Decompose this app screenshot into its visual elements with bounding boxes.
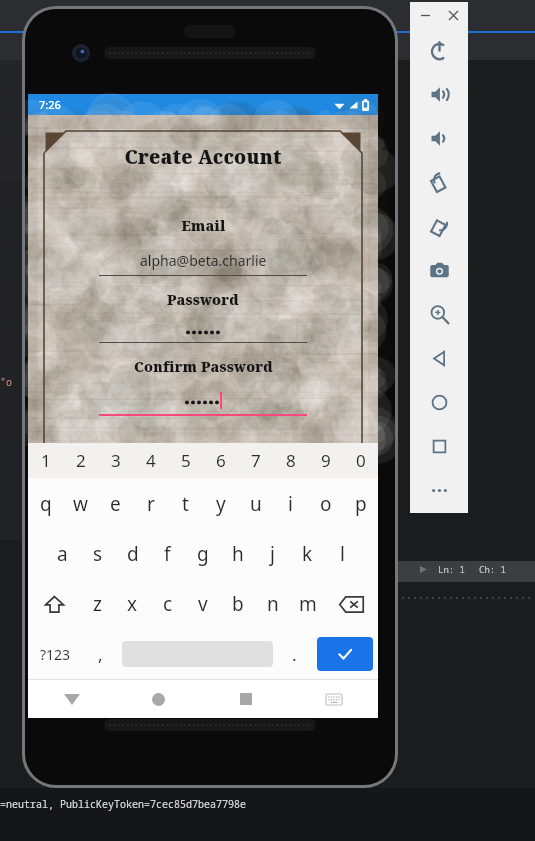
button[interactable]: b — [220, 579, 255, 629]
staticText: h — [232, 541, 244, 567]
button[interactable]: n — [255, 579, 290, 629]
button[interactable]: More — [410, 468, 468, 512]
button[interactable]: Backspace — [325, 579, 378, 629]
staticText: w — [73, 491, 88, 517]
staticText: o — [320, 491, 332, 517]
button[interactable]: Volume up — [410, 72, 468, 116]
button[interactable]: Home — [410, 380, 468, 424]
button[interactable]: 8 — [273, 443, 308, 478]
button[interactable]: w — [63, 478, 98, 529]
staticText: "o — [0, 375, 12, 389]
button[interactable]: y — [203, 478, 238, 529]
staticText: z — [93, 591, 102, 617]
staticText: 9 — [321, 449, 331, 472]
button[interactable]: Rotate right — [410, 204, 468, 248]
button[interactable]: Close — [444, 6, 462, 24]
staticText: =neutral, PublicKeyToken=7cec85d7bea7798… — [0, 797, 246, 811]
button[interactable]: Overview — [202, 680, 290, 718]
staticText: . — [292, 643, 297, 666]
button[interactable]: ?123 — [28, 629, 83, 679]
button[interactable]: 1 — [28, 443, 63, 478]
button[interactable]: u — [238, 478, 273, 529]
button[interactable]: 0 — [343, 443, 378, 478]
button[interactable]: f — [150, 529, 185, 579]
button[interactable]: 3 — [98, 443, 133, 478]
button[interactable]: r — [133, 478, 168, 529]
staticText: f — [164, 541, 171, 567]
staticText: 6 — [216, 449, 226, 472]
button[interactable]: k — [290, 529, 325, 579]
button[interactable]: 4 — [133, 443, 168, 478]
staticText: 7 — [251, 449, 261, 472]
button[interactable]: c — [150, 579, 185, 629]
button[interactable]: j — [255, 529, 290, 579]
button[interactable]: Volume down — [410, 116, 468, 160]
staticText: 8 — [286, 449, 296, 472]
button[interactable]: x — [115, 579, 150, 629]
button[interactable]: Enter — [317, 637, 373, 671]
staticText: y — [216, 491, 226, 517]
staticText: , — [98, 643, 103, 666]
staticText: 5 — [181, 449, 191, 472]
button[interactable] — [99, 325, 307, 343]
button[interactable]: s — [80, 529, 115, 579]
button[interactable]: g — [185, 529, 220, 579]
button[interactable]: 9 — [308, 443, 343, 478]
staticText: alpha@beta.charlie — [140, 251, 267, 270]
button[interactable]: . — [277, 629, 312, 679]
button[interactable]: o — [308, 478, 343, 529]
staticText: m — [299, 591, 317, 617]
button[interactable]: alpha@beta.charlie — [99, 251, 307, 276]
button[interactable]: Overview — [410, 424, 468, 468]
staticText: i — [288, 491, 293, 517]
staticText: p — [355, 491, 367, 517]
button[interactable]: l — [325, 529, 360, 579]
staticText: v — [198, 591, 208, 617]
button[interactable]: z — [80, 579, 115, 629]
staticText: k — [302, 541, 313, 567]
button[interactable]: 6 — [203, 443, 238, 478]
button[interactable]: 5 — [168, 443, 203, 478]
button[interactable] — [99, 392, 307, 416]
staticText: a — [57, 541, 68, 567]
button[interactable]: a — [45, 529, 80, 579]
button[interactable]: Switch keyboard — [290, 680, 378, 718]
button[interactable]: Zoom — [410, 292, 468, 336]
button[interactable]: , — [83, 629, 118, 679]
button[interactable]: Rotate left — [410, 160, 468, 204]
button[interactable]: i — [273, 478, 308, 529]
staticText: l — [340, 541, 345, 567]
staticText: n — [267, 591, 279, 617]
button[interactable]: d — [115, 529, 150, 579]
button[interactable]: Screenshot — [410, 248, 468, 292]
button[interactable]: Back — [410, 336, 468, 380]
button[interactable]: e — [98, 478, 133, 529]
button[interactable]: Power — [410, 28, 468, 72]
staticText: ?123 — [40, 645, 71, 664]
staticText: s — [93, 541, 103, 567]
staticText: 4 — [146, 449, 156, 472]
button[interactable]: m — [290, 579, 325, 629]
staticText: t — [182, 491, 189, 517]
button[interactable]: Hide keyboard — [28, 680, 115, 718]
staticText: 2 — [76, 449, 86, 472]
button[interactable]: t — [168, 478, 203, 529]
staticText: Password — [167, 290, 239, 309]
button[interactable]: Minimize — [416, 6, 434, 24]
button[interactable]: h — [220, 529, 255, 579]
button[interactable]: p — [343, 478, 378, 529]
button[interactable]: Home — [115, 680, 202, 718]
button[interactable]: 2 — [63, 443, 98, 478]
staticText: Email — [181, 216, 226, 235]
staticText: x — [127, 591, 138, 617]
staticText: Ln: 1 — [438, 563, 466, 575]
button[interactable]: 7 — [238, 443, 273, 478]
staticText: j — [270, 541, 275, 567]
button[interactable]: q — [28, 478, 63, 529]
staticText: e — [110, 491, 121, 517]
staticText: 7:26 — [39, 97, 61, 112]
button[interactable]: v — [185, 579, 220, 629]
button[interactable]: Shift — [28, 579, 80, 629]
staticText: d — [127, 541, 139, 567]
